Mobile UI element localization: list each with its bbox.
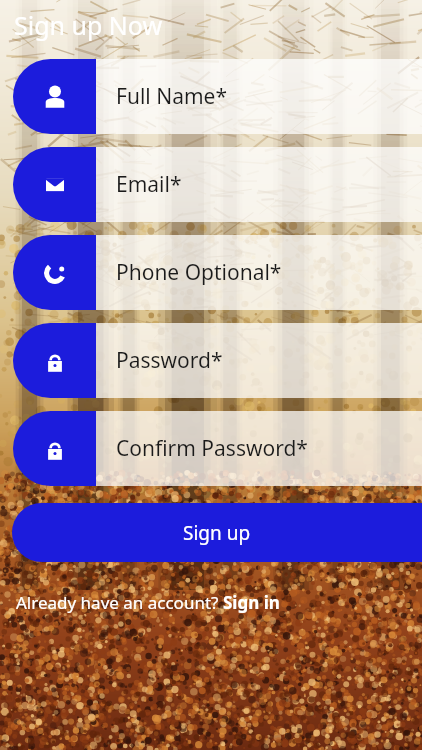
button[interactable]: Full Name*	[13, 59, 422, 134]
button[interactable]: Phone Optional*	[13, 235, 422, 310]
staticText: Sign up Now	[14, 8, 163, 42]
staticText: Sign in	[223, 591, 280, 614]
button[interactable]: Sign up	[12, 503, 422, 562]
staticText: Sign up	[183, 520, 251, 546]
staticText: Email*	[116, 170, 182, 199]
staticText: Full Name*	[116, 82, 227, 111]
button[interactable]: Email*	[13, 147, 422, 222]
staticText: Already have an account?	[16, 591, 223, 614]
staticText: Phone Optional*	[116, 258, 282, 287]
button[interactable]: Confirm Password*	[13, 411, 422, 486]
button[interactable]: Password*	[13, 323, 422, 398]
staticText: Confirm Password*	[116, 434, 308, 463]
button[interactable]: Already have an account?	[16, 591, 280, 614]
staticText: Password*	[116, 346, 223, 375]
